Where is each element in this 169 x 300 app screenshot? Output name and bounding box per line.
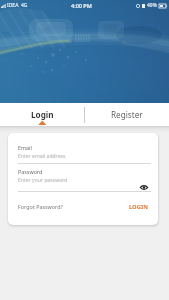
button[interactable]: LOGIN	[129, 203, 148, 211]
staticText: Forgot Password?	[18, 203, 63, 210]
staticText: Enter your password	[18, 177, 68, 184]
staticText: Email	[18, 144, 32, 151]
staticText: 49%	[147, 2, 157, 9]
staticText: Enter email address	[18, 153, 66, 160]
button[interactable]: Register	[85, 103, 169, 126]
staticText: IDEA 4G	[7, 2, 28, 9]
staticText: LOGIN	[129, 203, 148, 211]
button[interactable]: Forgot Password?	[18, 203, 63, 210]
staticText: Password	[18, 168, 43, 175]
staticText: 4:00 PM	[71, 2, 92, 9]
button[interactable]: Show password	[138, 182, 149, 193]
button[interactable]: Login	[0, 103, 84, 126]
staticText: Register	[111, 109, 143, 120]
staticText: Login	[31, 109, 54, 120]
